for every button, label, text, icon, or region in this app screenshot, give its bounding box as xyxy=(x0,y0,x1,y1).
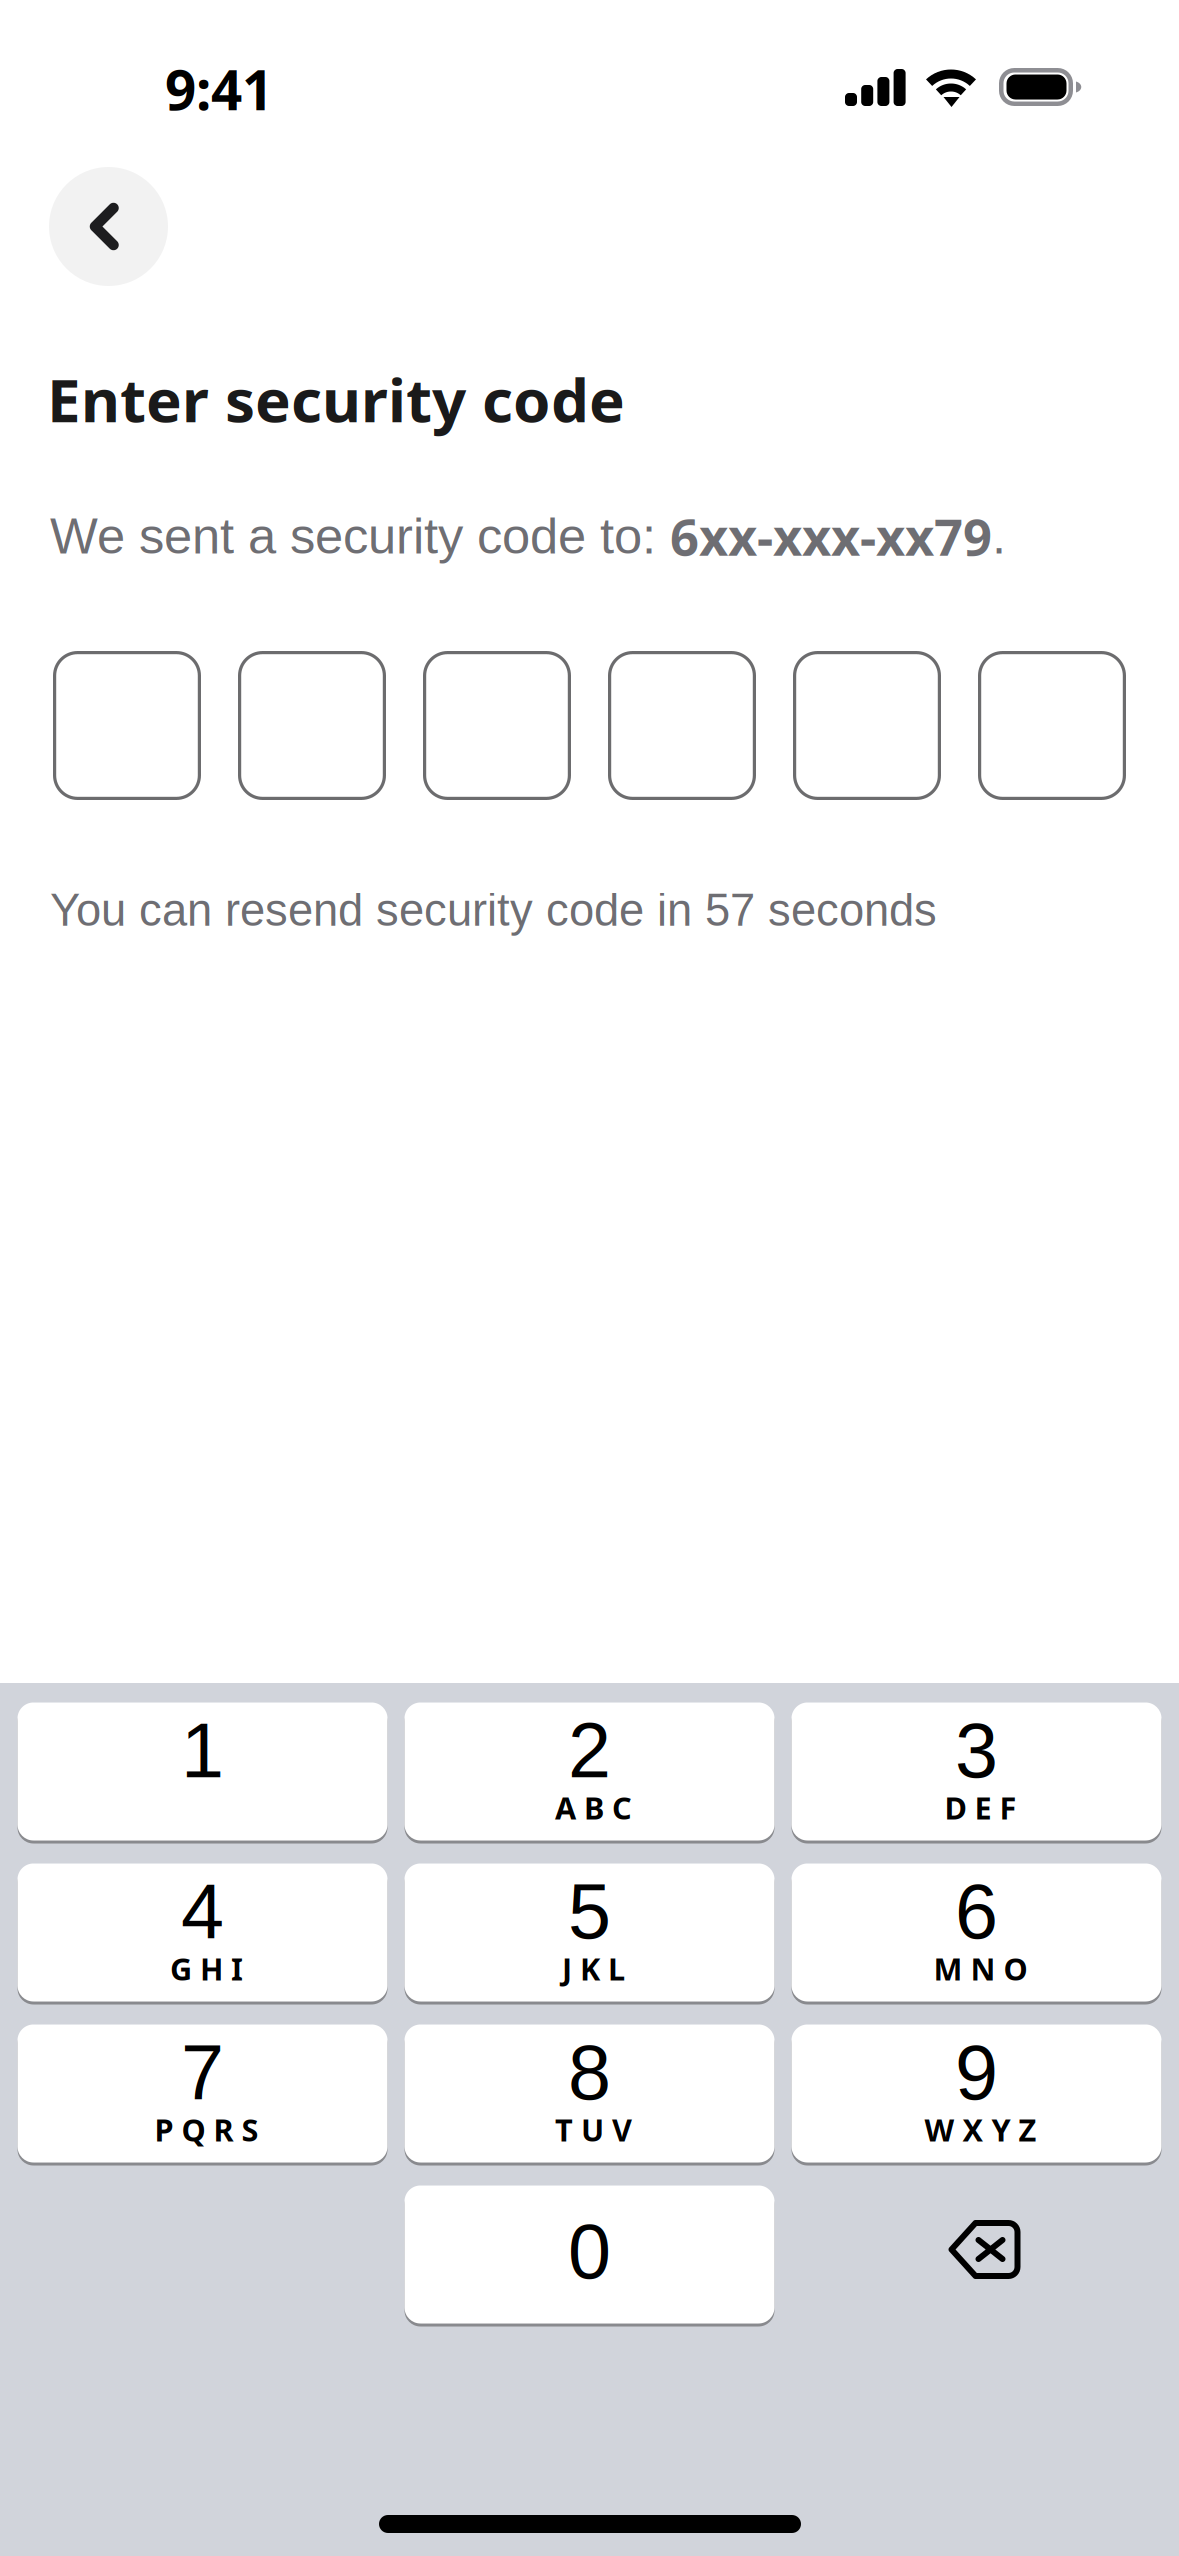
staticText: 7 xyxy=(181,2029,224,2116)
button[interactable]: 4 xyxy=(17,1862,387,2003)
button[interactable]: Security code xyxy=(53,651,1126,800)
staticText: 5 xyxy=(568,1868,611,1955)
staticText: TUV xyxy=(555,2109,632,2150)
staticText: We sent a security code to: xyxy=(50,508,670,564)
button[interactable]: 8 xyxy=(404,2023,774,2164)
button[interactable]: 6 xyxy=(791,1862,1161,2003)
staticText: 4 xyxy=(181,1868,224,1955)
button[interactable]: 5 xyxy=(404,1862,774,2003)
staticText: 3 xyxy=(955,1707,998,1794)
staticText: 6 xyxy=(955,1868,998,1955)
staticText: 0 xyxy=(568,2208,611,2295)
button[interactable]: 3 xyxy=(791,1701,1161,1842)
staticText: You can resend security code in 57 secon… xyxy=(50,885,937,935)
staticText: JKL xyxy=(562,1948,625,1989)
staticText: 8 xyxy=(568,2029,611,2116)
staticText: WXYZ xyxy=(924,2109,1036,2150)
staticText: MNO xyxy=(933,1948,1027,1989)
staticText: 2 xyxy=(568,1707,611,1794)
button[interactable]: Delete xyxy=(791,2184,1161,2325)
staticText: 6xx-xxx-xx79 xyxy=(670,501,992,570)
staticText: 9 xyxy=(955,2029,998,2116)
button[interactable]: 2 xyxy=(404,1701,774,1842)
staticText: ABC xyxy=(555,1787,632,1828)
button[interactable]: 9 xyxy=(791,2023,1161,2164)
button[interactable]: Back xyxy=(49,166,168,287)
staticText: . xyxy=(992,508,1006,564)
staticText: DEF xyxy=(944,1787,1016,1828)
staticText: Enter security code xyxy=(47,358,625,440)
staticText: 1 xyxy=(181,1707,224,1794)
button[interactable]: 1 xyxy=(17,1701,387,1842)
button[interactable]: 0 xyxy=(404,2184,774,2325)
staticText: PQRS xyxy=(154,2109,258,2150)
staticText: 9:41 xyxy=(165,52,273,126)
staticText: GHI xyxy=(170,1948,243,1989)
button[interactable]: 7 xyxy=(17,2023,387,2164)
